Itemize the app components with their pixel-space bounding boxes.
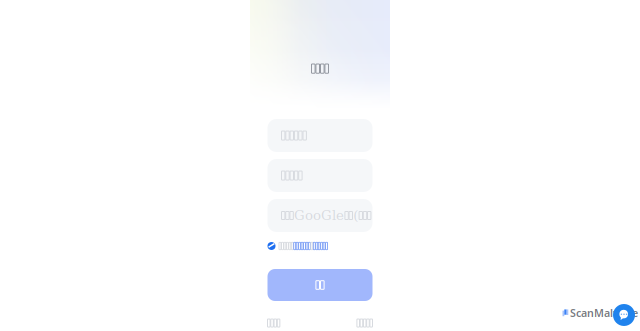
staticText: ScanMalware [570, 306, 638, 320]
button[interactable]: Forgot password [267, 319, 280, 327]
button[interactable] [267, 159, 372, 192]
button[interactable] [267, 269, 372, 301]
button[interactable]: Register [357, 319, 372, 327]
button[interactable]: GooGle [267, 199, 372, 232]
staticText: GooGle [294, 208, 344, 223]
button[interactable]: Agree to terms [267, 232, 372, 253]
button[interactable] [267, 119, 372, 152]
staticText: ( [353, 208, 358, 223]
button[interactable]: Open chat support [613, 304, 635, 326]
